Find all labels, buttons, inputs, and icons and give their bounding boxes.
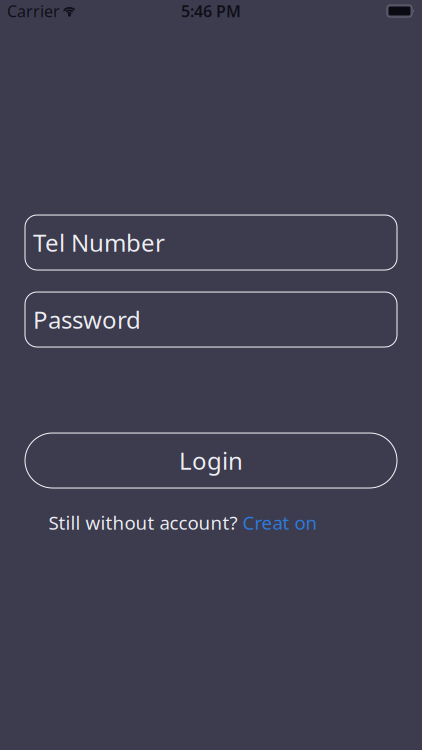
staticText: Still without account? bbox=[48, 510, 242, 535]
staticText: Tel Number bbox=[33, 227, 165, 258]
button[interactable]: Creat on bbox=[242, 510, 317, 535]
button[interactable]: Tel Number bbox=[25, 215, 397, 270]
staticText: 5:46 PM bbox=[181, 0, 241, 22]
button[interactable]: Password bbox=[25, 292, 397, 347]
staticText: Creat on bbox=[242, 510, 317, 535]
staticText: Password bbox=[33, 304, 141, 335]
staticText: Carrier bbox=[7, 0, 60, 22]
staticText: Login bbox=[179, 445, 243, 476]
button[interactable]: Login bbox=[25, 433, 397, 488]
